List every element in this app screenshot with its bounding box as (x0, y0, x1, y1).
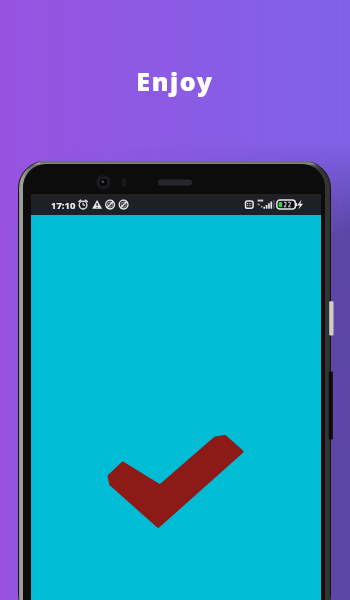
staticText: 17:10 (51, 199, 76, 212)
staticText: Enjoy (0, 64, 350, 98)
